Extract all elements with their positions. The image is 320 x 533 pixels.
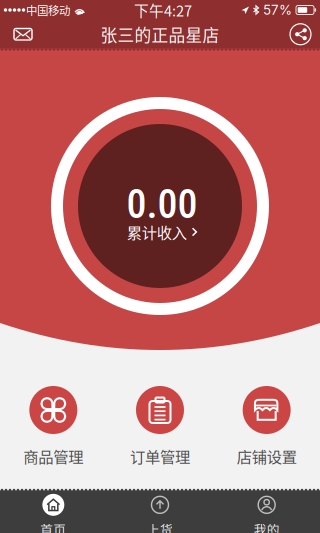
button[interactable]: Share [281, 21, 320, 48]
button[interactable]: 0.00 [50, 96, 270, 316]
button[interactable]: 订单管理 [107, 386, 213, 467]
button[interactable]: 上货 [107, 485, 213, 533]
button[interactable]: 我的 [213, 485, 320, 533]
staticText: 0.00 [126, 181, 197, 228]
staticText: 下午4:27 [134, 0, 192, 21]
staticText: 57% [263, 2, 292, 18]
button[interactable]: 店铺设置 [213, 386, 320, 467]
staticText: 我的 [254, 520, 280, 533]
staticText: 店铺设置 [237, 445, 297, 467]
button[interactable]: Messages [0, 20, 44, 48]
staticText: 中国移动 [26, 2, 70, 18]
button[interactable]: 首页 [0, 485, 107, 533]
staticText: 订单管理 [130, 445, 190, 467]
staticText: 累计收入 [127, 221, 187, 243]
staticText: 上货 [147, 520, 173, 533]
staticText: 张三的正品星店 [100, 22, 219, 46]
button[interactable]: 商品管理 [0, 386, 107, 467]
staticText: 首页 [40, 520, 66, 533]
staticText: 商品管理 [23, 445, 83, 467]
